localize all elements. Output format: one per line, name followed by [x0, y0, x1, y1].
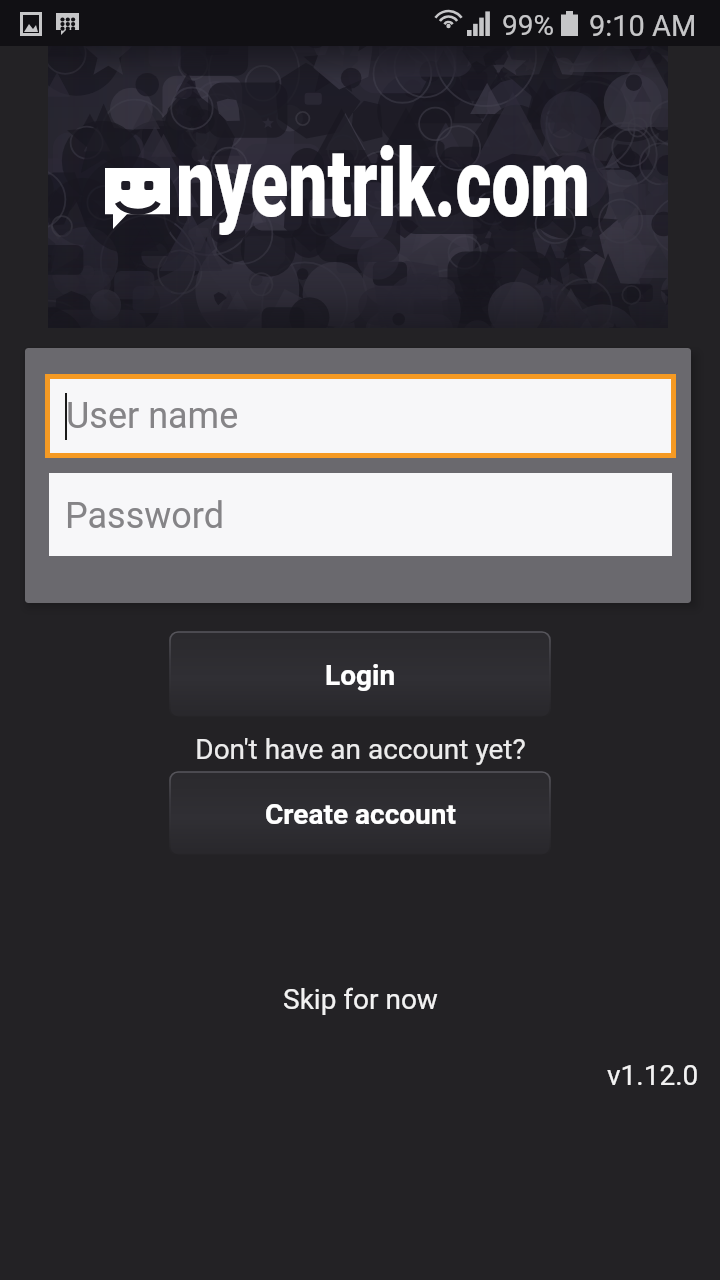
other: Messages — [56, 13, 79, 35]
staticText: v1.12.0 — [607, 1059, 699, 1092]
other: Wi-Fi — [437, 11, 460, 35]
staticText: 99% — [502, 9, 554, 42]
other: Screenshot — [20, 12, 42, 36]
staticText: Skip for now — [283, 983, 438, 1016]
staticText: Create account — [265, 798, 456, 831]
other: Signal — [467, 11, 491, 36]
other: Battery — [561, 11, 578, 36]
button[interactable]: Create account — [170, 772, 550, 855]
staticText: nyentrik.com — [176, 129, 590, 239]
button[interactable]: Password — [49, 473, 672, 556]
staticText: Don't have an account yet? — [195, 733, 526, 766]
button[interactable]: Login — [170, 632, 550, 717]
button[interactable]: Skip for now — [255, 980, 466, 1019]
staticText: Login — [325, 659, 396, 692]
button[interactable]: User name — [45, 374, 676, 458]
staticText: 9:10 AM — [589, 9, 697, 43]
staticText: User name — [66, 395, 239, 437]
staticText: Password — [65, 495, 225, 537]
